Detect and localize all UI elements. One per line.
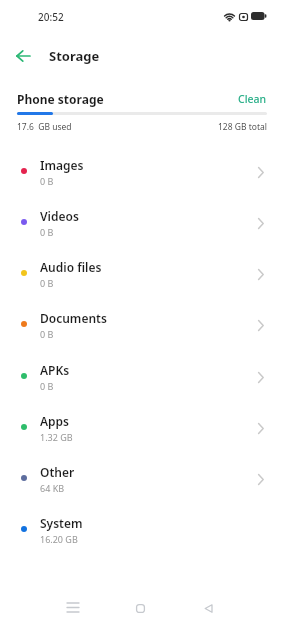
button[interactable]: Audio files: [0, 249, 284, 300]
staticText: 64 KB: [40, 482, 65, 494]
staticText: 128 GB total: [218, 121, 267, 133]
staticText: Apps: [40, 413, 70, 429]
staticText: Storage: [49, 47, 100, 65]
staticText: 16.20 GB: [40, 533, 78, 545]
button[interactable]: APKs: [0, 352, 284, 403]
button[interactable]: [120, 588, 160, 628]
staticText: 0 B: [40, 226, 54, 238]
staticText: APKs: [40, 362, 70, 378]
staticText: 0 B: [40, 175, 54, 187]
button[interactable]: [8, 44, 40, 68]
staticText: 20:52: [38, 10, 64, 24]
staticText: Videos: [40, 208, 79, 224]
button[interactable]: [188, 588, 228, 628]
staticText: Phone storage: [17, 91, 104, 107]
staticText: 0 B: [40, 328, 54, 340]
button[interactable]: Videos: [0, 198, 284, 249]
button[interactable]: Other: [0, 454, 284, 505]
button[interactable]: Clean: [230, 88, 274, 108]
staticText: Other: [40, 464, 75, 480]
staticText: Audio files: [40, 259, 102, 275]
button[interactable]: Documents: [0, 300, 284, 351]
button[interactable]: Apps: [0, 403, 284, 454]
button[interactable]: Images: [0, 147, 284, 198]
staticText: 0 B: [40, 277, 54, 289]
staticText: System: [40, 515, 83, 531]
staticText: 0 B: [40, 380, 54, 392]
staticText: Documents: [40, 310, 107, 326]
staticText: 1.32 GB: [40, 431, 73, 443]
staticText: 17.6 GB used: [17, 121, 72, 133]
staticText: Images: [40, 157, 84, 173]
button[interactable]: [53, 588, 93, 628]
staticText: Clean: [238, 92, 267, 106]
button[interactable]: System: [0, 505, 284, 556]
